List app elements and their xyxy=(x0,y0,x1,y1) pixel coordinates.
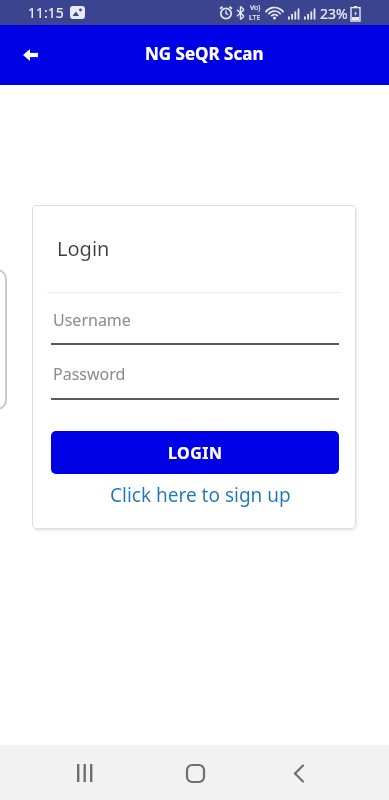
staticText: Login xyxy=(57,235,110,262)
button[interactable]: LOGIN xyxy=(51,431,339,474)
staticText: Vo) xyxy=(250,3,261,13)
staticText: Click here to sign up xyxy=(110,482,291,508)
staticText: LOGIN xyxy=(168,442,223,464)
button[interactable] xyxy=(175,753,215,793)
staticText: NG SeQR Scan xyxy=(145,42,264,65)
button[interactable] xyxy=(65,753,105,793)
staticText: 23% xyxy=(320,4,348,23)
button[interactable]: Click here to sign up xyxy=(32,481,356,509)
staticText: Username xyxy=(53,309,131,331)
staticText: Password xyxy=(53,363,126,385)
button[interactable] xyxy=(279,753,319,793)
staticText: LTE xyxy=(249,13,261,23)
staticText: 11:15 xyxy=(28,3,64,22)
button[interactable] xyxy=(14,39,46,71)
